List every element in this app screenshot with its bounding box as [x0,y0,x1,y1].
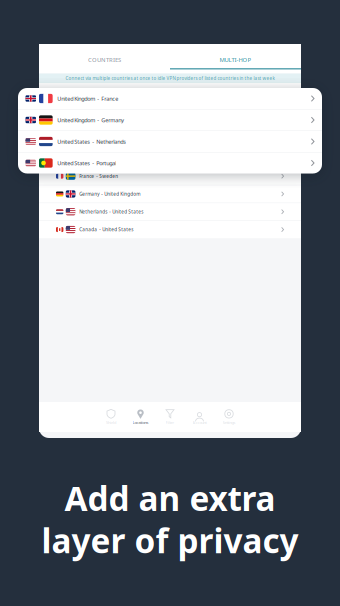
staticText: United Kingdom - France [57,95,118,102]
staticText: United States - Portugal [57,159,116,167]
staticText: COUNTRIES [88,56,121,64]
staticText: Locations [132,420,148,425]
staticText: United Kingdom - Germany [57,116,124,124]
button[interactable]: Netherlands - United States [39,203,301,220]
staticText: Connect via multiple countries at once t… [65,75,274,81]
staticText: Canada - United States [79,226,133,233]
staticText: Netherlands - United States [79,209,143,215]
button[interactable]: Filter [155,402,185,432]
staticText: Filter [165,420,174,425]
button[interactable]: United States - Netherlands [18,131,322,152]
staticText: Germany - United Kingdom [79,191,140,197]
button[interactable]: Locations [126,402,155,432]
staticText: layer of privacy [41,518,298,563]
button[interactable]: Canada - United States [39,221,301,238]
staticText: Add an extra [64,476,275,520]
button[interactable]: COUNTRIES [39,56,170,64]
button[interactable]: Shield [96,402,126,432]
button[interactable]: Germany - United Kingdom [39,185,301,203]
button[interactable]: MULTI-HOP [170,56,301,64]
staticText: United States - Netherlands [57,138,126,145]
staticText: Shield [106,420,116,425]
button[interactable]: Settings [214,402,244,432]
staticText: Account [192,420,206,425]
button[interactable]: United Kingdom - Germany [18,109,322,130]
button[interactable]: United States - Portugal [18,152,322,173]
button[interactable]: France - Sweden [39,167,301,185]
staticText: MULTI-HOP [219,56,251,64]
staticText: France - Sweden [79,173,118,179]
button[interactable]: Account [185,402,214,432]
staticText: Settings [222,420,235,425]
button[interactable]: United Kingdom - France [18,88,322,109]
